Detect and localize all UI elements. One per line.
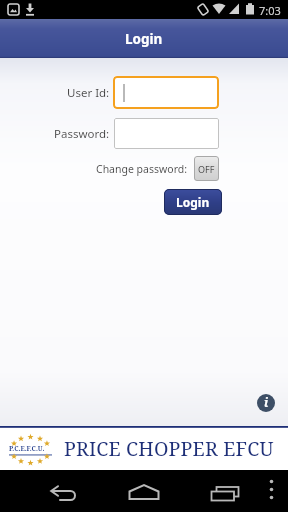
staticText: Password: (54, 126, 110, 142)
staticText: P.C.E.F.C.U. (9, 444, 45, 453)
button[interactable]: P.C.E.F.C.U. (0, 426, 288, 470)
staticText: PRICE CHOPPER EFCU (64, 435, 274, 462)
button[interactable]: Login (164, 189, 222, 215)
button[interactable]: i (257, 394, 275, 412)
button[interactable] (114, 118, 219, 149)
button[interactable] (113, 76, 219, 109)
staticText: Change password: (96, 162, 188, 176)
staticText: User Id: (67, 85, 110, 101)
staticText: Login (176, 194, 210, 210)
staticText: Login (125, 30, 163, 48)
staticText: 7:03 (259, 3, 281, 18)
staticText: OFF (198, 163, 215, 175)
staticText: i (264, 394, 269, 410)
button[interactable]: OFF (194, 156, 219, 181)
